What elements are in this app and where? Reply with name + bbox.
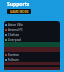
- button[interactable]: Chelsea: [5, 32, 59, 37]
- staticText: Chelsea: [8, 33, 20, 37]
- button[interactable]: Fulham: [5, 57, 59, 62]
- button[interactable]: Arsenal FC: [5, 27, 59, 32]
- staticText: Liverpool: [8, 38, 22, 42]
- staticText: Supports: [7, 1, 30, 8]
- button[interactable]: Everton: [5, 52, 59, 57]
- button[interactable]: Aston Villa: [5, 22, 59, 27]
- button[interactable]: GAME MODE: [7, 9, 31, 14]
- staticText: Everton: [8, 53, 19, 57]
- staticText: Fulham: [8, 58, 19, 62]
- staticText: Arsenal FC: [8, 28, 23, 32]
- staticText: Aston Villa: [8, 23, 23, 27]
- staticText: GAME MODE: [10, 10, 29, 14]
- button[interactable]: Liverpool: [5, 37, 59, 42]
